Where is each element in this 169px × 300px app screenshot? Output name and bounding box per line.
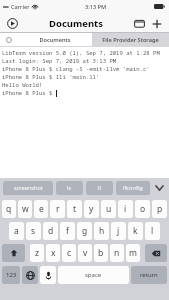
button[interactable]: Add (149, 16, 164, 31)
button[interactable]: Dictation (40, 266, 56, 284)
staticText: r (56, 203, 60, 215)
button[interactable]: Close tab (0, 33, 17, 47)
button[interactable]: space (58, 266, 129, 284)
button[interactable]: a (9, 222, 24, 240)
staticText: screenshot (14, 184, 43, 192)
button[interactable]: Run script (5, 16, 20, 31)
button[interactable]: z (30, 244, 44, 262)
button[interactable]: screenshot (3, 181, 53, 195)
button[interactable]: Shift (2, 244, 25, 262)
button[interactable]: File Provider Storage (92, 33, 169, 47)
staticText: Hello World! (2, 81, 43, 89)
button[interactable]: e (34, 200, 48, 218)
staticText: i (124, 203, 127, 215)
button[interactable]: i (118, 200, 133, 218)
staticText: 123 (6, 271, 17, 279)
button[interactable]: h (94, 222, 109, 240)
button[interactable]: Switch keyboard (22, 266, 38, 284)
staticText: 3:13 PM (85, 3, 107, 11)
staticText: p (157, 203, 163, 215)
staticText: d (48, 225, 54, 237)
staticText: LibTerm version 5.0 (1), Sep 7, 2019 at … (2, 49, 160, 57)
staticText: k (133, 225, 138, 237)
button[interactable]: n (110, 244, 124, 262)
staticText: Last login: Sep 7, 2019 at 3:13 PM (2, 57, 117, 65)
staticText: m (129, 247, 137, 259)
button[interactable]: Hide suggestions (152, 181, 166, 195)
staticText: ls (67, 184, 72, 192)
staticText: y (89, 203, 94, 215)
staticText: ifconfig (123, 184, 143, 192)
staticText: a (14, 225, 19, 237)
staticText: z (35, 247, 39, 259)
staticText: s (31, 225, 36, 237)
button[interactable]: 123 (2, 266, 20, 284)
button[interactable]: o (135, 200, 150, 218)
staticText: space (85, 271, 102, 279)
button[interactable]: p (152, 200, 167, 218)
button[interactable]: New folder (132, 16, 147, 31)
staticText: f (66, 225, 69, 237)
staticText: g (82, 225, 88, 237)
button[interactable]: j (111, 222, 126, 240)
button[interactable]: k (128, 222, 143, 240)
button[interactable]: ifconfig (116, 181, 150, 195)
staticText: iPhone 8 Plus $ clang -S -emit-llvm 'mai… (2, 65, 150, 73)
button[interactable]: m (126, 244, 140, 262)
staticText: n (114, 247, 120, 259)
staticText: h (99, 225, 105, 237)
staticText: o (140, 203, 146, 215)
button[interactable]: f (60, 222, 75, 240)
staticText: iPhone 8 Plus $ (2, 89, 56, 97)
button[interactable]: l (145, 222, 160, 240)
staticText: l (151, 225, 154, 237)
button[interactable]: b (94, 244, 108, 262)
staticText: Carrier (11, 3, 30, 11)
button[interactable]: r (50, 200, 65, 218)
button[interactable]: Documents (17, 33, 92, 47)
button[interactable]: y (84, 200, 99, 218)
staticText: Documents (39, 36, 71, 44)
button[interactable]: q (2, 200, 16, 218)
staticText: w (22, 203, 29, 215)
button[interactable]: d (43, 222, 58, 240)
staticText: e (39, 203, 44, 215)
staticText: File Provider Storage (102, 36, 159, 44)
button[interactable]: u (101, 200, 116, 218)
staticText: q (6, 203, 12, 215)
button[interactable]: v (78, 244, 92, 262)
button[interactable]: ls (56, 181, 83, 195)
button[interactable]: Backspace (145, 244, 167, 262)
button[interactable]: return (131, 266, 167, 284)
staticText: u (106, 203, 112, 215)
button[interactable]: g (77, 222, 92, 240)
staticText: return (140, 271, 158, 279)
button[interactable]: t (67, 200, 82, 218)
staticText: c (67, 247, 72, 259)
staticText: j (117, 225, 120, 237)
staticText: Documents (49, 17, 103, 30)
button[interactable]: x (46, 244, 60, 262)
staticText: v (83, 247, 88, 259)
staticText: x (51, 247, 56, 259)
button[interactable]: s (26, 222, 41, 240)
button[interactable]: c (62, 244, 76, 262)
staticText: b (98, 247, 104, 259)
button[interactable]: ll (86, 181, 113, 195)
staticText: t (73, 203, 77, 215)
staticText: iPhone 8 Plus $ lli 'main.ll' (2, 73, 100, 81)
staticText: ll (98, 184, 101, 192)
button[interactable]: w (18, 200, 32, 218)
